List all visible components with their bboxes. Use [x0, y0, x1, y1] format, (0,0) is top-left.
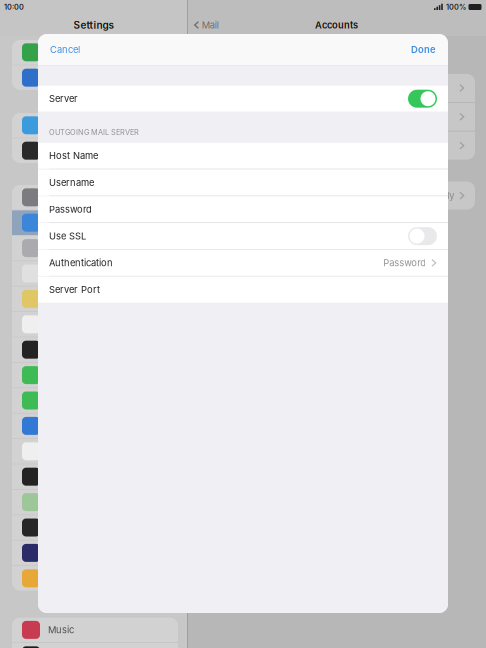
- staticText: Wallet & Apple Pay: [48, 145, 130, 156]
- button[interactable]: Use SSL: [38, 223, 448, 250]
- button[interactable]: Home: [12, 566, 178, 591]
- staticText: Music: [48, 624, 74, 636]
- staticText: 100%: [446, 3, 466, 11]
- staticText: Weekly: [423, 190, 454, 201]
- staticText: Cancel: [50, 44, 80, 55]
- staticText: Authentication: [49, 257, 113, 269]
- button[interactable]: Username: [38, 169, 448, 196]
- button[interactable]: Calendar: [12, 261, 178, 286]
- button[interactable]: Wallet & Apple Pay: [12, 138, 178, 163]
- button[interactable]: Podcasts: [12, 337, 178, 362]
- button[interactable]: Stocks: [12, 464, 178, 489]
- button[interactable]: Shortcuts: [12, 541, 178, 565]
- button[interactable]: FaceTime: [12, 388, 178, 413]
- staticText: Notes: [48, 293, 74, 305]
- staticText: OUTGOING MAIL SERVER: [49, 128, 139, 137]
- staticText: Settings: [73, 19, 113, 31]
- button[interactable]: Add Account: [204, 132, 475, 160]
- button[interactable]: Reminders: [12, 312, 178, 337]
- button[interactable]: Authentication: [38, 250, 448, 277]
- button[interactable]: TV: [12, 643, 178, 648]
- staticText: App Store: [48, 120, 92, 131]
- button[interactable]: Mail: [188, 14, 219, 36]
- button[interactable]: Contacts: [12, 236, 178, 260]
- button[interactable]: Server: [38, 86, 448, 112]
- staticText: Host Name: [49, 150, 98, 161]
- button[interactable]: Password: [38, 196, 448, 223]
- button[interactable]: Host Name: [38, 143, 448, 169]
- staticText: Done: [411, 44, 436, 55]
- button[interactable]: Gmail: [204, 103, 475, 131]
- staticText: Accounts: [315, 19, 358, 31]
- button[interactable]: App Store: [12, 113, 178, 138]
- staticText: Battery: [48, 47, 79, 58]
- button[interactable]: Notes: [12, 287, 178, 311]
- staticText: Mail: [48, 217, 65, 228]
- button[interactable]: Server Port: [38, 277, 448, 303]
- staticText: Username: [49, 177, 94, 188]
- button[interactable]: Maps: [12, 490, 178, 514]
- staticText: Server: [49, 93, 78, 104]
- staticText: Mail: [202, 19, 219, 31]
- staticText: Fetch New Data: [218, 190, 288, 201]
- staticText: iCloud: [218, 82, 247, 94]
- staticText: Passwords: [48, 192, 96, 203]
- staticText: 10:00: [4, 3, 24, 11]
- staticText: Contacts: [48, 242, 88, 254]
- button[interactable]: Translate: [12, 515, 178, 540]
- button[interactable]: Battery: [12, 40, 178, 65]
- staticText: Password: [383, 257, 426, 269]
- button[interactable]: Safari: [12, 414, 178, 438]
- button[interactable]: News: [12, 439, 178, 464]
- staticText: Server Port: [49, 284, 100, 295]
- button[interactable]: Mail: [12, 210, 178, 235]
- button[interactable]: Passwords: [12, 185, 178, 210]
- button[interactable]: Fetch New Data: [204, 182, 475, 210]
- staticText: Add Account: [218, 140, 276, 151]
- button[interactable]: Messages: [12, 363, 178, 387]
- button[interactable]: Done: [399, 34, 448, 64]
- staticText: Use SSL: [49, 230, 86, 242]
- staticText: Calendar: [48, 268, 88, 279]
- button[interactable]: iCloud: [204, 74, 475, 102]
- button[interactable]: Music: [12, 618, 178, 642]
- button[interactable]: Privacy & Security: [12, 65, 178, 90]
- button[interactable]: Cancel: [38, 34, 92, 64]
- staticText: Password: [49, 204, 92, 215]
